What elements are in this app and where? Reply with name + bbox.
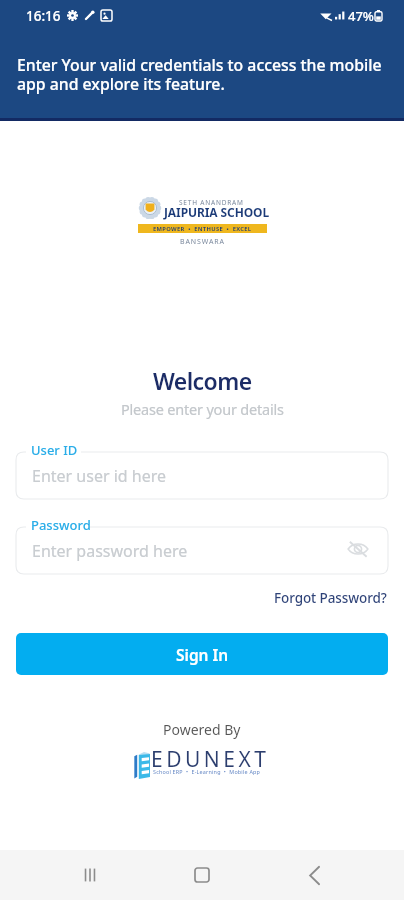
button[interactable] <box>16 527 388 574</box>
button[interactable]: Home <box>180 853 224 897</box>
staticText: SETH ANANDRAM <box>179 198 244 207</box>
button[interactable]: Forgot Password? <box>270 586 391 610</box>
staticText: Enter password here <box>32 540 188 562</box>
staticText: School ERP • E-Learning • Mobile App <box>153 768 261 775</box>
staticText: Welcome <box>153 365 252 396</box>
staticText: Enter user id here <box>32 465 167 487</box>
staticText: User ID <box>31 441 78 459</box>
button[interactable]: Toggle password visibility <box>342 533 374 565</box>
staticText: Please enter your details <box>121 399 284 419</box>
staticText: EMPOWER • ENTHUSE • EXCEL <box>153 225 252 233</box>
staticText: Forgot Password? <box>274 589 387 607</box>
staticText: BANSWARA <box>180 237 225 247</box>
button[interactable]: Back <box>292 853 336 897</box>
staticText: 47% <box>348 7 374 25</box>
staticText: Powered By <box>163 720 241 739</box>
staticText: Enter Your valid credentials to access t… <box>17 54 382 95</box>
staticText: Password <box>31 516 91 534</box>
staticText: EDUNEXT <box>151 745 270 774</box>
staticText: JAIPURIA SCHOOL <box>164 204 270 220</box>
staticText: 16:16 <box>26 7 61 25</box>
button[interactable]: Sign In <box>16 633 388 675</box>
button[interactable] <box>16 452 388 499</box>
staticText: Sign In <box>176 644 229 665</box>
button[interactable]: Recents <box>68 853 112 897</box>
